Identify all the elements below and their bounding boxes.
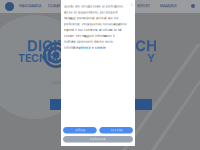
staticText: messaggi promozionali allineati alle tue	[64, 17, 119, 20]
staticText: informativa	[64, 46, 78, 49]
staticText: DIGITAL360 TECH	[27, 37, 157, 55]
button[interactable]: Preferenze	[63, 136, 133, 142]
staticText: TECNOLOGIA DI OGGI Y	[18, 51, 155, 64]
staticText: Questo sito utilizza cookie di profilazi…	[64, 5, 124, 8]
staticText: WHITEPAPER	[89, 4, 109, 8]
staticText: anche di suggerimento, per proporti	[64, 11, 118, 14]
button[interactable]: Close	[129, 2, 134, 7]
staticText: REPORT	[137, 4, 150, 8]
staticText: esprimi il tuo consenso all'utilizzo di …	[64, 28, 122, 32]
staticText: invitiamo a prendere visione della	[64, 40, 112, 43]
staticText: preferenze. Proseguendo nella navigazion…	[64, 23, 127, 26]
staticText: Accetta	[111, 129, 122, 132]
staticText: Preferenze	[90, 138, 106, 141]
button[interactable]: EVENTI	[66, 1, 80, 11]
button[interactable]: MAGAZINE	[159, 1, 178, 11]
button[interactable]: PANORAMICA	[18, 1, 42, 11]
staticText: x	[130, 2, 132, 7]
button[interactable]: Accetta	[99, 127, 133, 133]
staticText: cookie. Per maggiori informazioni ti	[64, 34, 115, 38]
button[interactable]: Search	[189, 2, 197, 10]
button[interactable]: FORUM	[47, 1, 61, 11]
staticText: privacy e cookie	[79, 46, 106, 49]
button[interactable]: WHITEPAPER	[88, 1, 110, 11]
staticText: Rifiuta	[75, 129, 84, 132]
staticText: FORUM	[48, 4, 60, 8]
button[interactable]: REPORT	[136, 1, 151, 11]
staticText: PANORAMICA	[19, 4, 41, 8]
staticText: EVENTI	[67, 4, 79, 8]
staticText: il punto di riferimento per il mondo tec…	[52, 80, 125, 85]
button[interactable]: Rifiuta	[63, 127, 97, 133]
staticText: MAGAZINE	[160, 4, 177, 8]
